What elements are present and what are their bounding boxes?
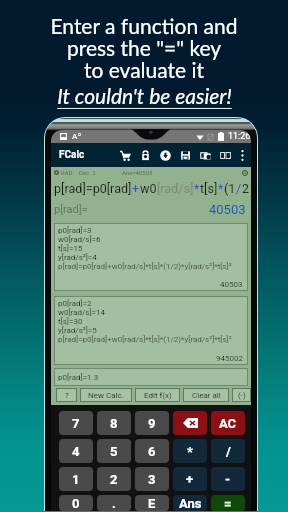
staticText: Enter a function and press the "=" key t… — [50, 13, 238, 83]
button[interactable]: (-) — [232, 388, 251, 402]
staticText: Clear all — [192, 391, 221, 400]
staticText: Edit f(x) — [144, 391, 172, 400]
staticText: p[rad]= — [54, 203, 88, 216]
button[interactable]: p0[rad]=2 — [54, 296, 248, 365]
button[interactable]: New Calc. — [80, 388, 132, 402]
staticText: t[s]=30 — [58, 317, 83, 326]
staticText: + — [186, 472, 194, 487]
staticText: w0[rad/s]=14 — [58, 308, 105, 317]
staticText: 9 — [148, 416, 156, 431]
staticText: 4 — [72, 444, 80, 459]
button[interactable]: 1 — [59, 467, 93, 491]
staticText: * — [194, 181, 200, 196]
staticText: (1 — [224, 181, 236, 196]
staticText: * — [187, 444, 193, 459]
button[interactable]: Buy — [135, 143, 155, 167]
button[interactable]: Delete — [173, 411, 207, 435]
button[interactable]: 7 — [59, 411, 93, 435]
button[interactable]: / — [211, 439, 245, 463]
staticText: 2 — [242, 181, 250, 196]
staticText: 11:26 — [228, 131, 251, 142]
button[interactable]: 2 — [97, 467, 131, 491]
staticText: w0[rad/s]=6 — [58, 235, 101, 244]
staticText: 1 — [72, 472, 80, 487]
staticText: (-) — [238, 391, 246, 400]
staticText: p0[rad]=2 — [58, 299, 92, 308]
staticText: 40503 — [220, 280, 243, 289]
button[interactable]: 9 — [135, 411, 169, 435]
button[interactable]: - — [211, 467, 245, 491]
staticText: E — [148, 496, 156, 511]
button[interactable]: Edit f(x) — [135, 388, 180, 402]
staticText: y[rad/s²]=4 — [58, 253, 97, 262]
button[interactable]: . — [97, 495, 131, 511]
staticText: 3 — [148, 472, 156, 487]
staticText: New Calc. — [88, 391, 124, 400]
button[interactable]: FCalc — [59, 149, 85, 161]
button[interactable]: 8 — [97, 411, 131, 435]
staticText: Dec. 2 — [79, 169, 96, 176]
staticText: * — [218, 181, 224, 196]
button[interactable]: Ans — [173, 495, 207, 511]
staticText: A — [72, 132, 78, 141]
staticText: . — [112, 496, 116, 511]
button[interactable]: 4 — [59, 439, 93, 463]
button[interactable]: 6 — [135, 439, 169, 463]
staticText: 5 — [110, 444, 118, 459]
staticText: t[s] — [200, 181, 218, 196]
button[interactable]: 3 — [135, 467, 169, 491]
staticText: Ans=40503 — [122, 169, 153, 176]
staticText: ? — [65, 391, 69, 400]
other: Settings — [242, 170, 248, 176]
staticText: = — [224, 496, 232, 511]
staticText: It couldn't be easier! — [57, 83, 232, 108]
staticText: 6 — [148, 444, 156, 459]
staticText: ⁰ — [78, 132, 81, 141]
staticText: p[rad]=p0[rad]+w0[rad/s]*t[s]*(1/2)*y[ra… — [58, 335, 232, 344]
staticText: 0 — [72, 496, 80, 511]
button[interactable]: p0[rad]=3 — [54, 223, 248, 291]
staticText: RAD — [61, 169, 73, 176]
button[interactable]: Save — [175, 143, 195, 167]
staticText: [rad/s] — [157, 181, 194, 196]
staticText: p[rad]=p0[rad] — [54, 181, 132, 196]
button[interactable]: Shop — [115, 143, 135, 167]
staticText: AC — [219, 416, 237, 431]
staticText: 40503 — [209, 202, 246, 217]
button[interactable]: = — [211, 495, 245, 511]
staticText: 2 — [110, 472, 118, 487]
button[interactable]: More options — [235, 143, 249, 167]
button[interactable]: p0[rad]=1.3 — [58, 368, 248, 386]
button[interactable]: 0 — [59, 495, 93, 511]
staticText: p0[rad]=1.3 — [58, 373, 99, 382]
staticText: - — [225, 472, 231, 487]
staticText: p0[rad]=3 — [58, 226, 92, 235]
button[interactable]: Clear all — [183, 388, 229, 402]
button[interactable]: Library — [215, 143, 235, 167]
staticText: t[s]=15 — [58, 244, 83, 253]
staticText: 8 — [110, 416, 118, 431]
staticText: Ans — [179, 496, 202, 511]
button[interactable]: ? — [56, 388, 77, 402]
staticText: 7 — [72, 416, 80, 431]
staticText: y[rad/s²]=5 — [58, 326, 97, 335]
staticText: w0 — [140, 181, 157, 196]
staticText: / — [226, 444, 231, 459]
staticText: 945002 — [216, 354, 243, 363]
button[interactable]: + — [173, 467, 207, 491]
button[interactable]: * — [173, 439, 207, 463]
button[interactable]: 5 — [97, 439, 131, 463]
staticText: + — [132, 181, 140, 196]
button[interactable]: E — [135, 495, 169, 511]
staticText: p[rad]=p0[rad]+w0[rad/s]*t[s]*(1/2)*y[ra… — [58, 262, 232, 271]
button[interactable]: Download — [155, 143, 175, 167]
staticText: / — [236, 181, 242, 196]
button[interactable]: Open file — [195, 143, 215, 167]
button[interactable]: AC — [211, 411, 245, 435]
